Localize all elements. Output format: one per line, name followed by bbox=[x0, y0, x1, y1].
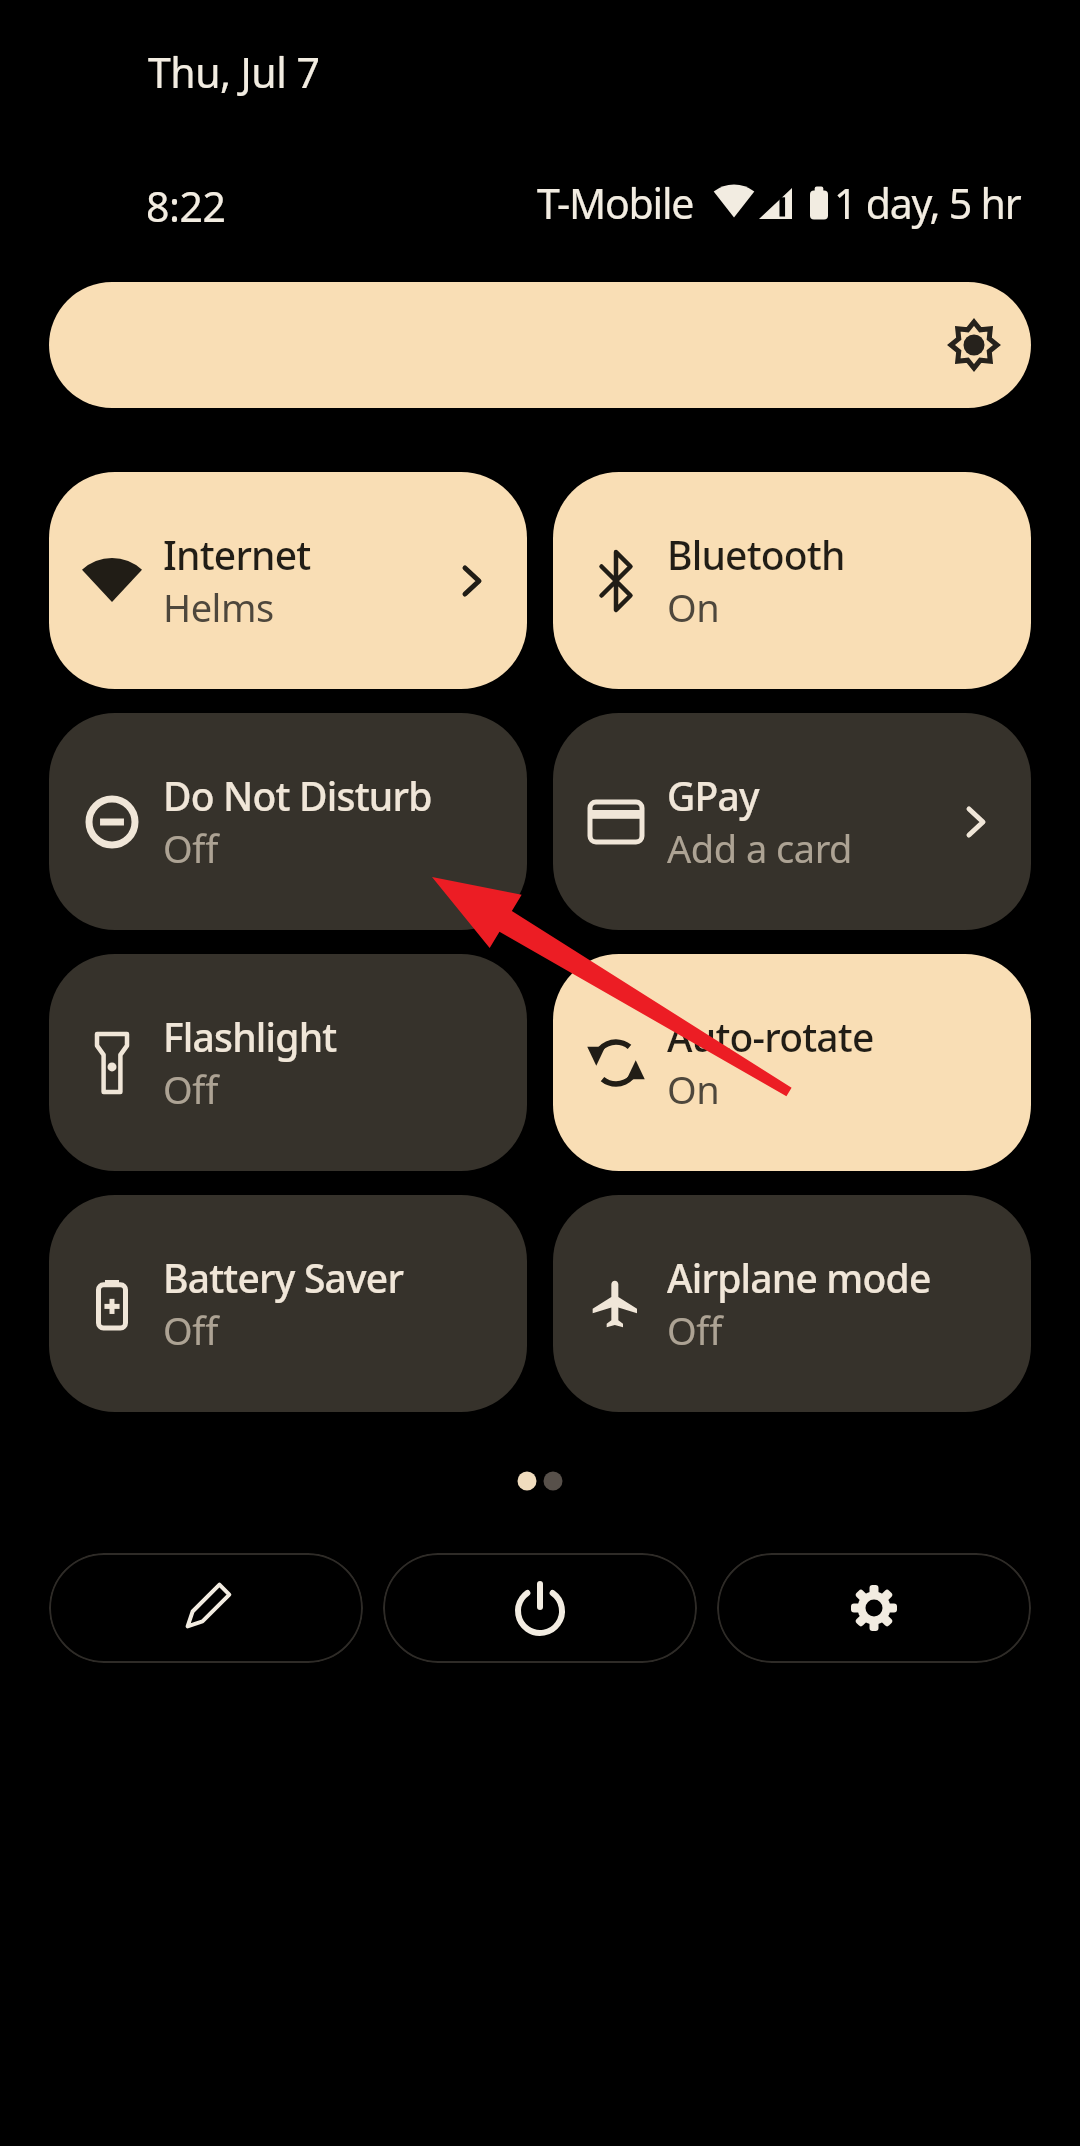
button[interactable] bbox=[717, 1553, 1031, 1663]
button[interactable] bbox=[383, 1553, 697, 1663]
button[interactable]: Do Not Disturb bbox=[49, 713, 527, 930]
staticText: Off bbox=[163, 1304, 218, 1356]
button[interactable]: Bluetooth bbox=[553, 472, 1031, 689]
staticText: Thu, Jul 7 bbox=[148, 44, 320, 100]
staticText: Off bbox=[163, 1063, 218, 1115]
button[interactable]: GPay bbox=[553, 713, 1031, 930]
staticText: Auto-rotate bbox=[667, 1010, 874, 1063]
staticText: T-Mobile bbox=[537, 175, 694, 231]
button[interactable]: Airplane mode bbox=[553, 1195, 1031, 1412]
button[interactable] bbox=[49, 282, 1031, 408]
staticText: Bluetooth bbox=[667, 528, 845, 581]
staticText: GPay bbox=[667, 769, 759, 822]
staticText: Airplane mode bbox=[667, 1251, 931, 1304]
button[interactable] bbox=[49, 1553, 363, 1663]
button[interactable]: Battery Saver bbox=[49, 1195, 527, 1412]
button[interactable]: Auto-rotate bbox=[553, 954, 1031, 1171]
button[interactable]: Internet bbox=[49, 472, 527, 689]
staticText: Off bbox=[667, 1304, 722, 1356]
staticText: Flashlight bbox=[163, 1010, 337, 1063]
staticText: On bbox=[667, 581, 720, 633]
staticText: Internet bbox=[163, 528, 311, 581]
staticText: 1 day, 5 hr bbox=[834, 175, 1021, 231]
button[interactable]: Flashlight bbox=[49, 954, 527, 1171]
staticText: Helms bbox=[163, 581, 274, 633]
staticText: On bbox=[667, 1063, 720, 1115]
staticText: Battery Saver bbox=[163, 1251, 404, 1304]
staticText: Add a card bbox=[667, 822, 852, 874]
staticText: Do Not Disturb bbox=[163, 769, 432, 822]
staticText: Off bbox=[163, 822, 218, 874]
staticText: 8:22 bbox=[146, 178, 226, 234]
